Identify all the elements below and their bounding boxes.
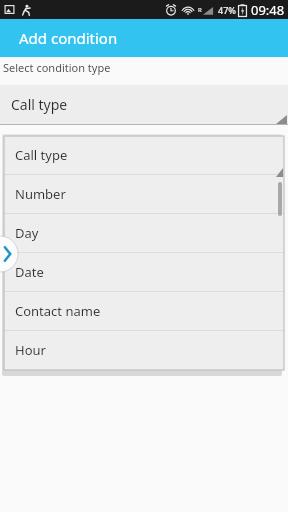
staticText: Day <box>15 224 39 242</box>
button[interactable]: Contact name <box>4 292 284 330</box>
staticText: Add condition <box>19 28 118 48</box>
button[interactable]: Add condition <box>0 19 288 57</box>
button[interactable]: Call type <box>0 85 288 125</box>
button[interactable]: Number <box>4 175 284 213</box>
staticText: R <box>198 6 202 14</box>
staticText: Call type <box>15 146 68 164</box>
staticText: Call type <box>11 95 68 114</box>
button[interactable]: Hour <box>4 331 284 369</box>
button[interactable]: Open navigation drawer <box>0 236 18 272</box>
staticText: Date <box>15 263 44 281</box>
staticText: 09:48 <box>251 1 285 19</box>
button[interactable]: Call type <box>4 136 284 174</box>
staticText: Select condition type <box>3 60 111 75</box>
staticText: Number <box>15 185 66 203</box>
button[interactable]: Day <box>4 214 284 252</box>
staticText: Contact name <box>15 302 101 320</box>
staticText: 47% <box>218 4 236 16</box>
button[interactable]: Date <box>4 253 284 291</box>
staticText: Hour <box>15 341 46 359</box>
